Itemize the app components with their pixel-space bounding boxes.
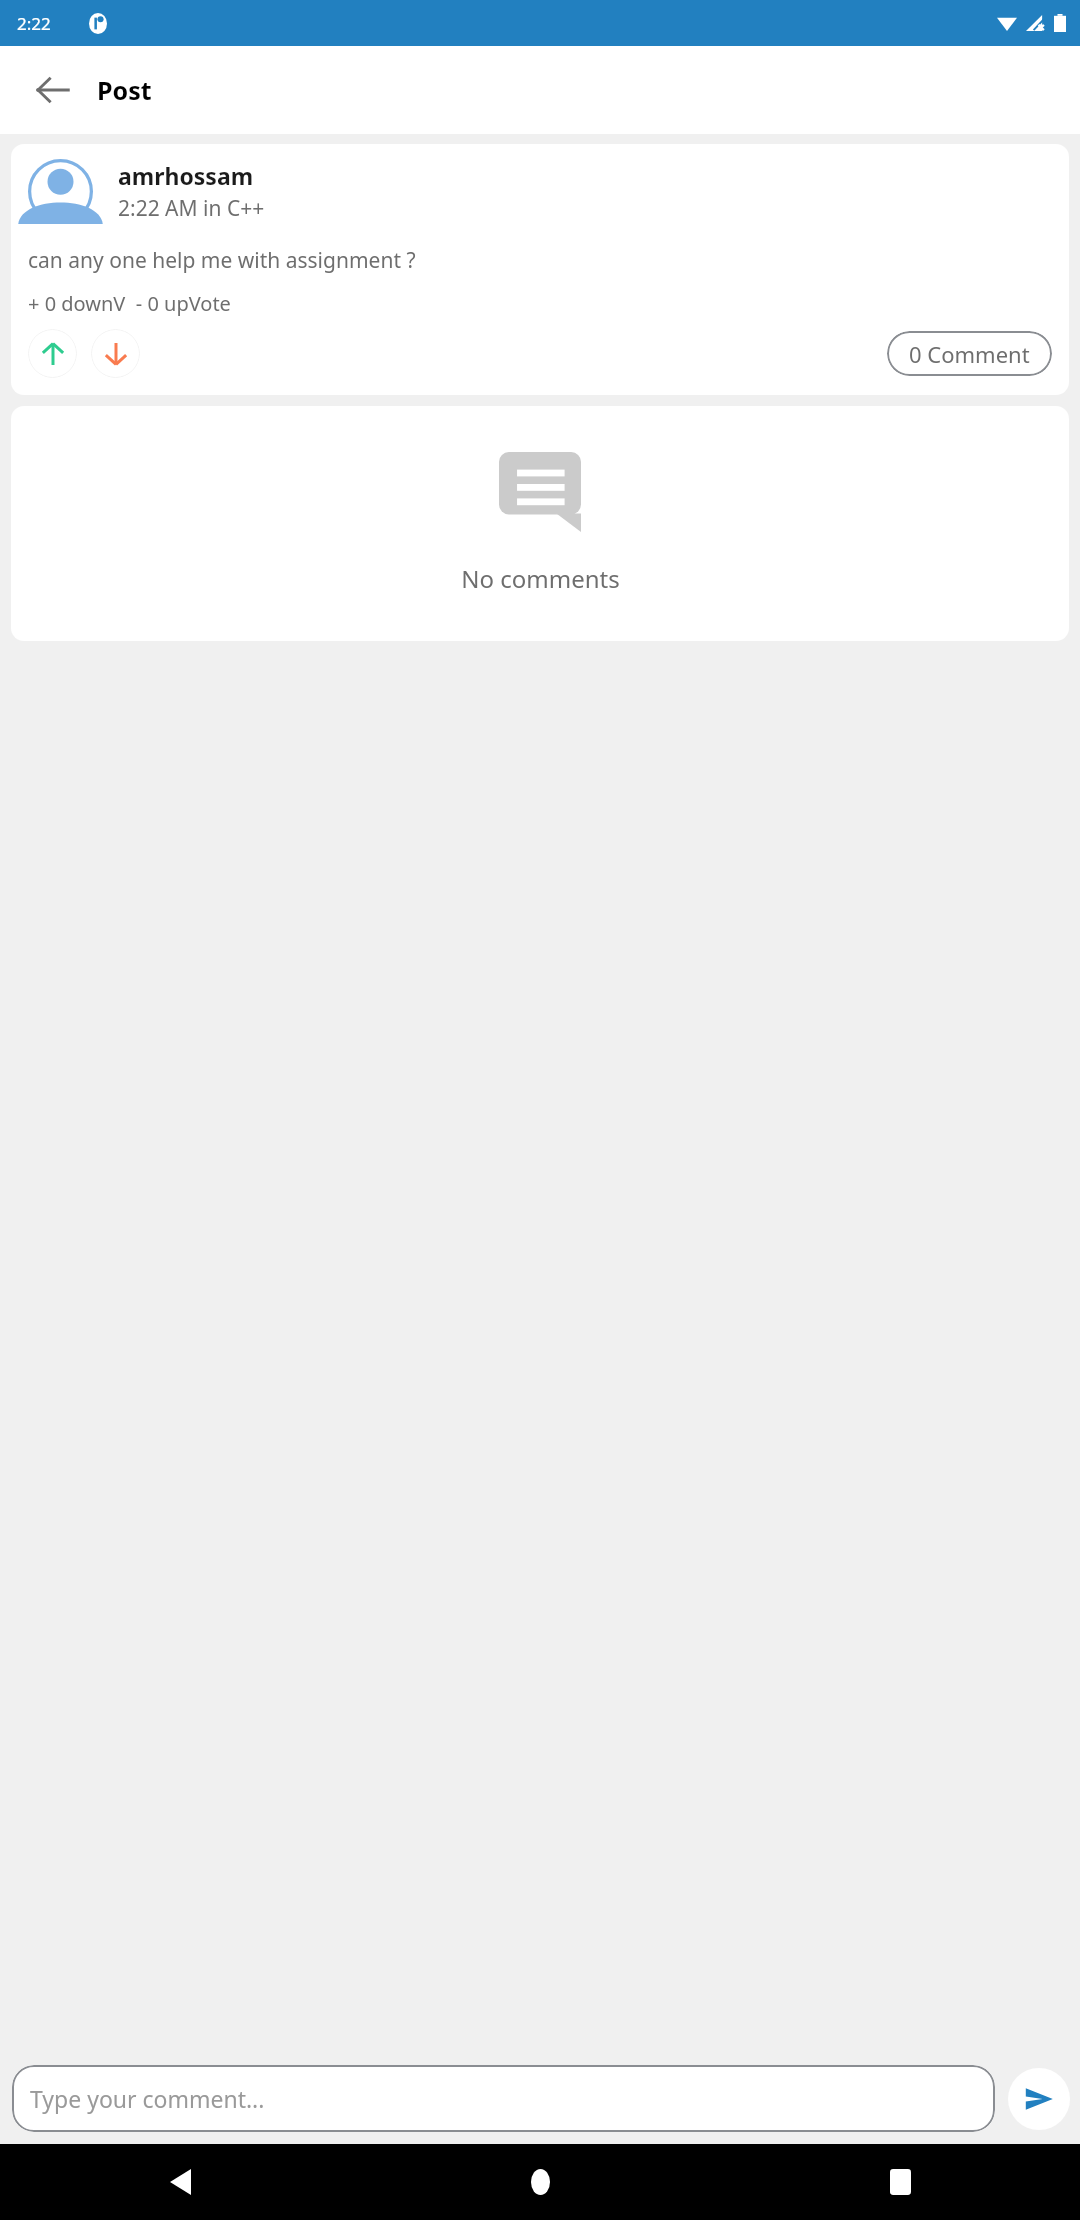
staticText: amrhossam	[118, 160, 254, 191]
staticText: can any one help me with assignment ?	[28, 246, 416, 275]
button[interactable]: Send	[1008, 2068, 1070, 2130]
button[interactable]: amrhossam	[11, 144, 1069, 395]
staticText: + 0 downV - 0 upVote	[28, 290, 231, 317]
staticText: No comments	[461, 562, 620, 595]
button[interactable]: Type your comment...	[12, 2065, 995, 2132]
button[interactable]: 0 Comment	[887, 331, 1052, 376]
button[interactable]: Back	[22, 59, 84, 121]
button[interactable]: Back	[0, 2144, 360, 2220]
button[interactable]: Downvote	[91, 329, 140, 378]
staticText: 2:22	[17, 12, 51, 35]
staticText: Type your comment...	[30, 2083, 265, 2114]
button[interactable]: Recent apps	[720, 2144, 1080, 2220]
staticText: 2:22 AM in C++	[118, 194, 265, 223]
staticText: 0 Comment	[909, 339, 1030, 369]
button[interactable]: Home	[360, 2144, 720, 2220]
staticText: Post	[97, 73, 152, 107]
button[interactable]: Upvote	[28, 329, 77, 378]
